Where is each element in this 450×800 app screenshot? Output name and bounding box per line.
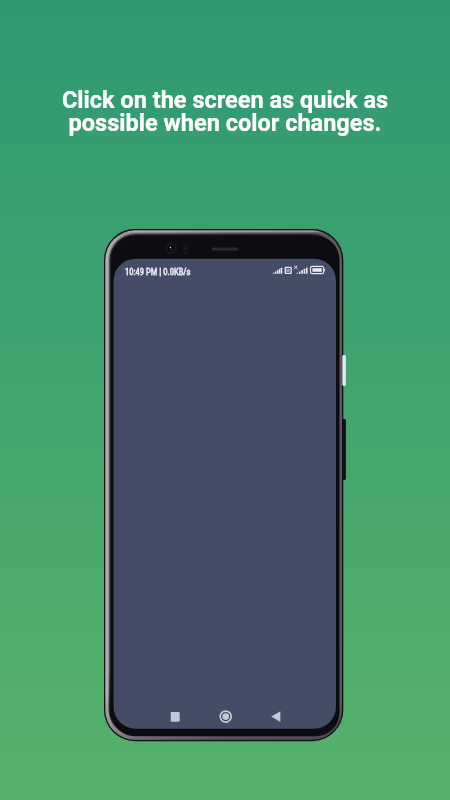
button[interactable]: Tap anywhere to continue [0,0,450,800]
button[interactable]: Back [266,707,285,727]
staticText: 10:49 PM | 0.0KB/s [125,267,191,277]
button[interactable]: Home [216,707,235,727]
button[interactable]: Recents [166,707,185,727]
staticText: Click on the screen as quick as possible… [0,86,450,137]
